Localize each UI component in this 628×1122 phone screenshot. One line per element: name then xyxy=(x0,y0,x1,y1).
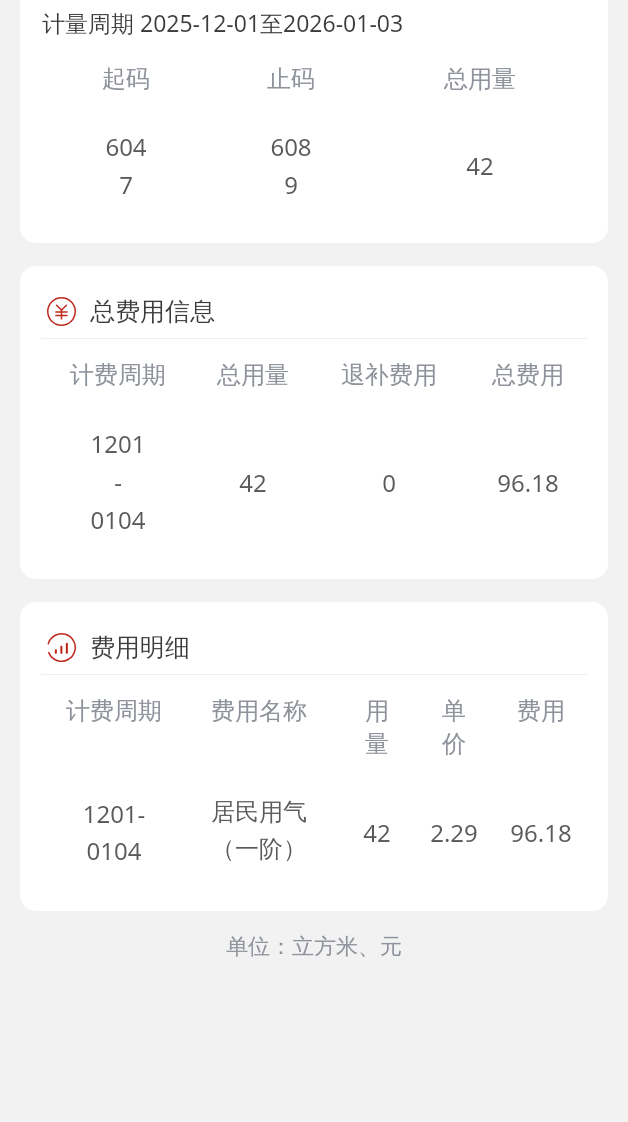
staticText: 单 价 xyxy=(304,696,604,759)
staticText: 费用 xyxy=(391,696,608,726)
staticText: 总用量 xyxy=(330,64,608,94)
staticText: 1201- 0104 xyxy=(20,797,264,867)
button[interactable]: Total cost information xyxy=(20,275,608,347)
staticText: 0 xyxy=(239,466,539,499)
button[interactable]: Charge breakdown xyxy=(20,602,608,911)
staticText: 计量周期 2025-12-01至2026-01-03 xyxy=(42,7,404,38)
staticText: 42 xyxy=(103,466,403,499)
button[interactable]: Total cost information xyxy=(20,266,608,579)
staticText: 费用明细 xyxy=(90,632,190,663)
staticText: 费用名称 xyxy=(109,696,409,726)
staticText: 计费周期 xyxy=(20,696,264,726)
button[interactable]: Charge breakdown xyxy=(20,611,608,683)
staticText: 止码 xyxy=(141,64,441,94)
staticText: 604 7 xyxy=(20,130,276,201)
staticText: 96.18 xyxy=(378,466,608,499)
staticText: 起码 xyxy=(20,64,276,94)
staticText: 总用量 xyxy=(103,360,403,390)
staticText: 42 xyxy=(227,816,527,849)
other: Total cost information xyxy=(47,297,76,326)
staticText: 1201 - 0104 xyxy=(20,427,268,536)
staticText: 2.29 xyxy=(304,816,604,849)
staticText: 96.18 xyxy=(391,816,608,849)
staticText: 608 9 xyxy=(141,130,441,201)
other: Charge breakdown xyxy=(47,633,76,662)
staticText: 单位：立方米、元 xyxy=(0,933,628,961)
staticText: 总费用信息 xyxy=(90,296,215,327)
staticText: 42 xyxy=(330,149,608,182)
staticText: 退补费用 xyxy=(239,360,539,390)
staticText: 计费周期 xyxy=(20,360,268,390)
staticText: 居民用气 （一阶） xyxy=(109,797,409,864)
button[interactable]: 计量周期 2025-12-01至2026-01-03 xyxy=(20,0,608,243)
staticText: 总费用 xyxy=(378,360,608,390)
staticText: 用 量 xyxy=(227,696,527,759)
